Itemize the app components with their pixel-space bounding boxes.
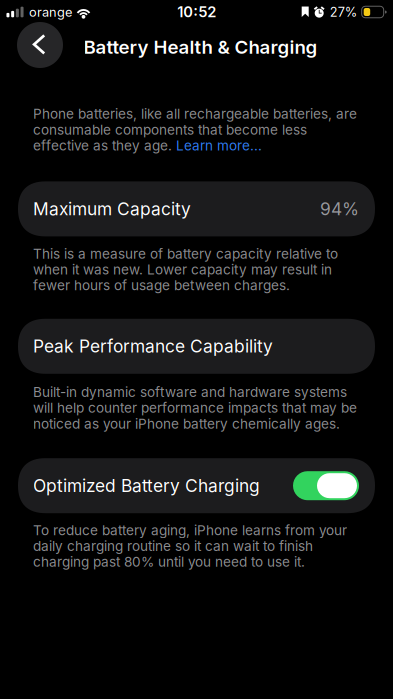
button[interactable]: Maximum Capacity [0,181,375,236]
staticText: 94% [320,198,359,219]
staticText: 10:52 [177,3,216,21]
staticText: Built-in dynamic software and hardware s… [33,384,357,432]
staticText: 27% [330,4,358,20]
button[interactable]: Back [17,22,63,68]
staticText: Battery Health & Charging [83,36,317,58]
staticText: Maximum Capacity [33,198,191,219]
staticText: This is a measure of battery capacity re… [33,246,338,293]
staticText: orange [29,4,72,20]
staticText: Peak Performance Capability [33,336,273,357]
button[interactable]: Peak Performance Capability [0,319,375,374]
button[interactable]: Optimized Battery Charging [0,458,375,513]
staticText: Phone batteries, like all rechargeable b… [33,106,357,153]
staticText: Optimized Battery Charging [33,475,260,496]
staticText: To reduce battery aging, iPhone learns f… [33,522,347,570]
